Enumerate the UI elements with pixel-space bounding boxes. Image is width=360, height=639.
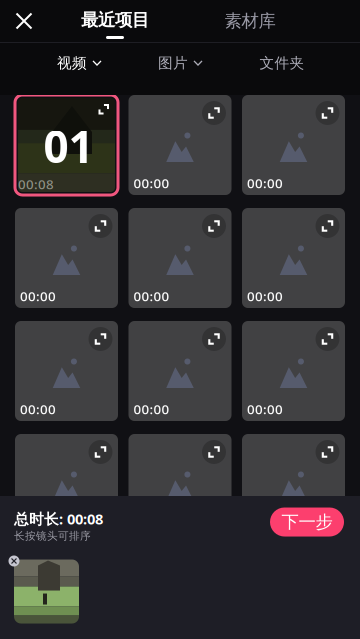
button[interactable]: 图片 — [138, 47, 222, 78]
staticText: 总时长: 00:08 — [14, 509, 103, 528]
button[interactable]: Media item — [15, 321, 118, 421]
button[interactable]: Media item — [128, 95, 231, 195]
staticText: 视频 — [57, 54, 87, 72]
button[interactable]: Close — [2, 0, 46, 42]
button[interactable]: Media item — [242, 95, 345, 195]
button[interactable]: Selected clip — [14, 559, 79, 623]
button[interactable]: 最近项目 — [60, 0, 170, 42]
button[interactable]: Media item — [15, 208, 118, 308]
button[interactable]: Media item — [128, 434, 231, 534]
staticText: 00:00 — [20, 400, 56, 418]
button[interactable]: Media item — [242, 208, 345, 308]
button[interactable]: Media item — [242, 434, 345, 534]
staticText: 素材库 — [224, 10, 275, 32]
staticText: 最近项目 — [81, 9, 149, 31]
staticText: 00:00 — [247, 174, 283, 192]
staticText: 图片 — [158, 54, 188, 72]
staticText: 下一步 — [281, 511, 332, 533]
button[interactable]: 文件夹 — [240, 47, 324, 78]
staticText: 00:00 — [20, 287, 56, 305]
button[interactable]: Media item — [242, 321, 345, 421]
button[interactable]: 下一步 — [270, 507, 344, 536]
staticText: 00:00 — [247, 513, 283, 531]
staticText: 文件夹 — [259, 54, 304, 72]
button[interactable]: Media item — [128, 321, 231, 421]
staticText: 长按镜头可排序 — [14, 529, 91, 543]
button[interactable]: Selected clip 01 — [15, 95, 118, 195]
staticText: 00:00 — [247, 400, 283, 418]
button[interactable]: 素材库 — [204, 0, 296, 42]
staticText: 00:00 — [20, 513, 56, 531]
staticText: 00:00 — [133, 287, 169, 305]
staticText: 00:08 — [18, 175, 54, 193]
button[interactable]: 视频 — [37, 47, 121, 78]
staticText: 00:00 — [133, 174, 169, 192]
button[interactable]: Media item — [15, 434, 118, 534]
staticText: 01 — [43, 117, 93, 175]
button[interactable]: Media item — [128, 208, 231, 308]
staticText: 00:00 — [247, 287, 283, 305]
button[interactable]: Remove clip — [7, 554, 20, 567]
staticText: 00:00 — [133, 400, 169, 418]
